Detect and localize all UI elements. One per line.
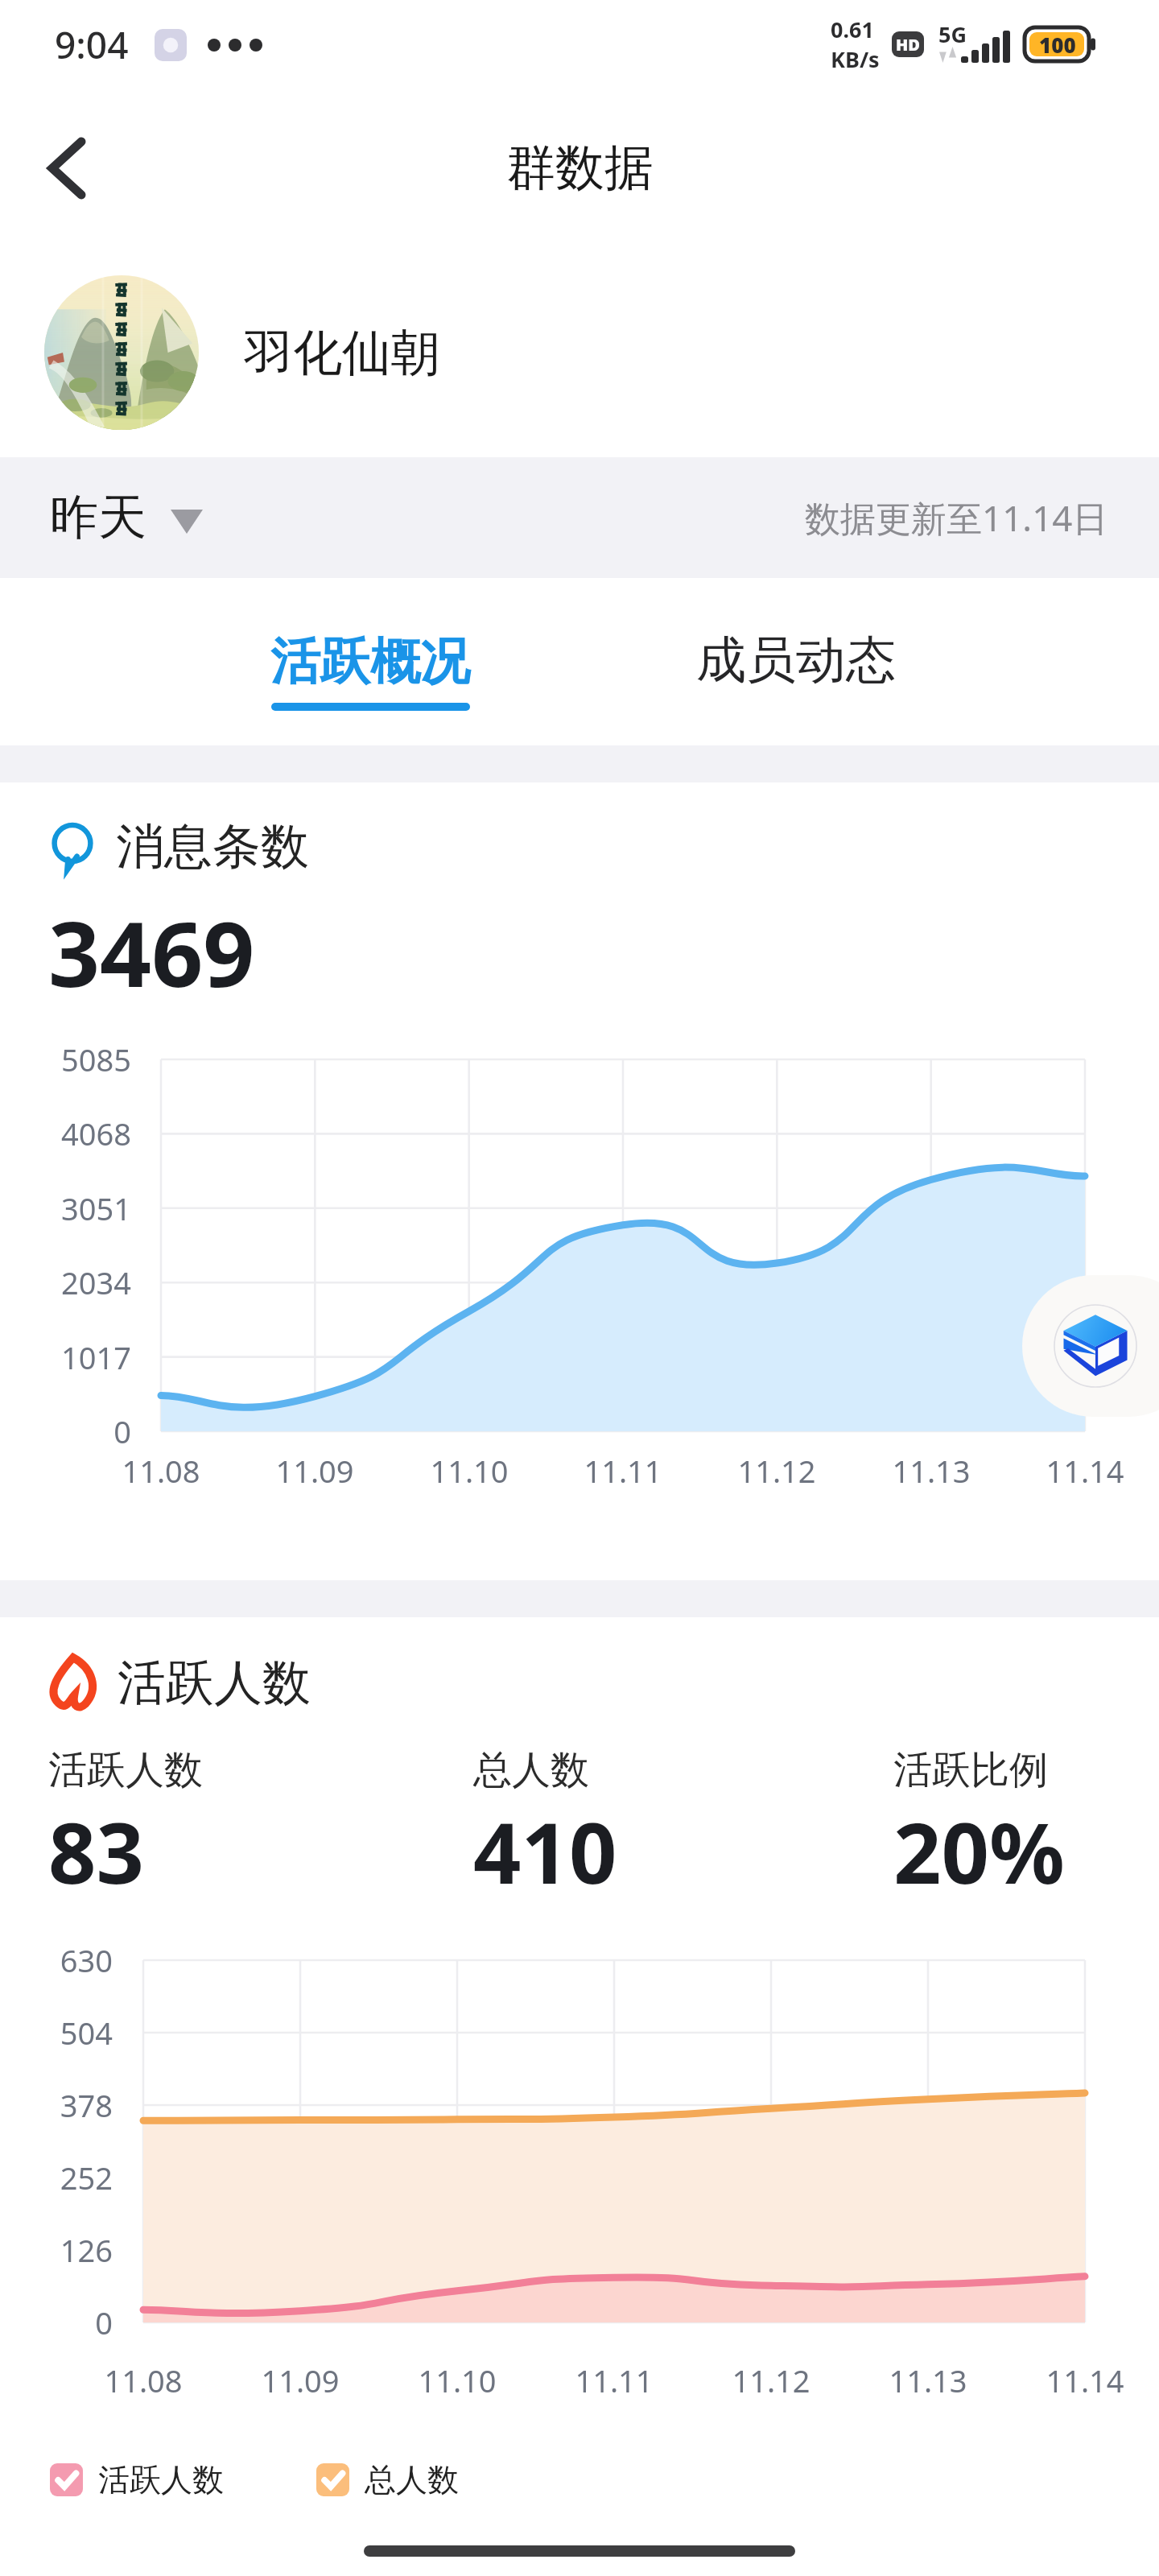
staticText: 11.09 [234, 1450, 395, 1492]
staticText: 100 [1039, 31, 1076, 59]
staticText: 11.12 [696, 1450, 857, 1492]
staticText: 11.11 [542, 1450, 703, 1492]
staticText: 11.11 [534, 2359, 695, 2401]
staticText: 群数据 [506, 137, 654, 199]
staticText: 83 [48, 1794, 144, 1909]
button[interactable]: 昨天 [0, 471, 227, 564]
staticText: 4068 [0, 1113, 131, 1154]
button[interactable]: Back [0, 101, 134, 235]
staticText: 0 [0, 2301, 113, 2343]
staticText: 630 [0, 1939, 113, 1981]
staticText: 活跃人数 [118, 1653, 311, 1714]
staticText: 5085 [0, 1038, 131, 1080]
staticText: 410 [473, 1794, 617, 1909]
staticText: 消息条数 [116, 816, 309, 877]
staticText: 11.14 [1004, 2359, 1159, 2401]
staticText: 9:04 [55, 19, 129, 70]
staticText: 252 [0, 2157, 113, 2198]
staticText: 1017 [0, 1336, 131, 1378]
staticText: 活跃概况 [270, 630, 470, 693]
button[interactable]: 活跃概况 [113, 578, 627, 745]
staticText: 活跃比例 [893, 1746, 1048, 1794]
staticText: 11.14 [1004, 1450, 1159, 1492]
staticText: 378 [0, 2084, 113, 2126]
staticText: 11.10 [389, 1450, 550, 1492]
staticText: 0 [0, 1410, 131, 1452]
button[interactable]: Floating shortcut [1022, 1275, 1159, 1417]
staticText: 11.13 [848, 2359, 1008, 2401]
staticText: 126 [0, 2229, 113, 2271]
staticText: 总人数 [473, 1746, 589, 1794]
staticText: 活跃人数 [48, 1746, 203, 1794]
staticText: 数据更新至11.14日 [805, 493, 1108, 542]
staticText: 羽化仙朝 [244, 322, 440, 384]
button[interactable]: 成员动态 [627, 578, 965, 745]
staticText: 总人数 [365, 2460, 459, 2500]
staticText: 11.08 [63, 2359, 224, 2401]
staticText: 11.10 [377, 2359, 538, 2401]
button[interactable]: 活跃人数 [50, 2460, 224, 2500]
staticText: 11.13 [851, 1450, 1012, 1492]
staticText: 3051 [0, 1187, 131, 1229]
button[interactable]: 羽化仙朝 [0, 248, 1159, 457]
staticText: 活跃人数 [98, 2460, 224, 2500]
button[interactable]: 总人数 [316, 2460, 459, 2500]
staticText: HD [896, 34, 920, 56]
staticText: KB/s [831, 44, 880, 74]
staticText: 成员动态 [696, 629, 896, 691]
staticText: 3469 [48, 890, 255, 1013]
staticText: 20% [893, 1794, 1065, 1909]
staticText: 11.09 [220, 2359, 381, 2401]
staticText: 5G [938, 19, 967, 49]
staticText: 0.61 [831, 14, 874, 44]
staticText: 11.08 [80, 1450, 241, 1492]
staticText: 11.12 [691, 2359, 852, 2401]
staticText: 2034 [0, 1261, 131, 1303]
staticText: 504 [0, 2012, 113, 2054]
staticText: 昨天 [50, 487, 146, 548]
